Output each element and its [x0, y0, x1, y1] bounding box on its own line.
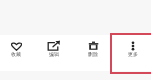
staticText: 收藏	[11, 51, 21, 57]
button[interactable]: Edit	[42, 40, 66, 58]
staticText: 编辑	[49, 51, 59, 57]
staticText: 更多	[128, 51, 138, 57]
button[interactable]: More	[121, 40, 145, 58]
button[interactable]: Delete	[81, 40, 105, 58]
button[interactable]: Favorite	[4, 40, 28, 58]
staticText: 删除	[88, 51, 98, 57]
